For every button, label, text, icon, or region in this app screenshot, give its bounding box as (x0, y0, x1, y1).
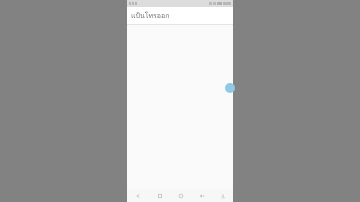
button[interactable]: Screenshot (212, 189, 233, 202)
button[interactable]: Volume (191, 189, 212, 202)
staticText: แป้นโทรออก (131, 10, 170, 21)
button[interactable]: แป้นโทรออก (127, 7, 233, 25)
button[interactable]: Home (170, 189, 191, 202)
button[interactable]: Recent apps (149, 189, 170, 202)
button[interactable]: Back (127, 189, 149, 202)
